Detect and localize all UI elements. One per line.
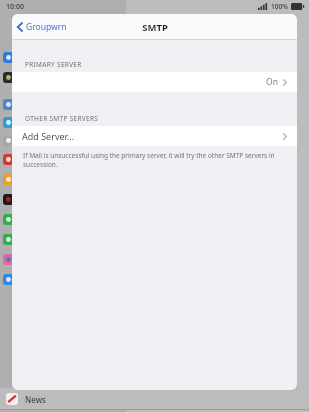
button[interactable]: App icon (3, 194, 14, 205)
staticText: SMTP (142, 21, 168, 34)
button[interactable]: App icon (3, 117, 14, 128)
staticText: OTHER SMTP SERVERS (25, 114, 99, 123)
button[interactable]: App icon (3, 174, 14, 185)
staticText: On (266, 76, 278, 88)
staticText: 10:00 (6, 2, 24, 12)
button[interactable]: News (0, 388, 309, 410)
staticText: PRIMARY SERVER (25, 60, 82, 69)
button[interactable]: On (12, 72, 297, 92)
button[interactable]: App icon (3, 99, 14, 110)
button[interactable]: App icon (3, 154, 14, 165)
button[interactable]: Add Server... (12, 126, 297, 146)
staticText: Add Server... (22, 130, 75, 142)
button[interactable]: App icon (3, 274, 14, 285)
button[interactable]: App icon (3, 214, 14, 225)
button[interactable]: Groupwrn (17, 21, 67, 33)
button[interactable]: App icon (3, 254, 14, 265)
button[interactable]: App icon (3, 234, 14, 245)
button[interactable]: App icon (3, 135, 14, 146)
staticText: Groupwrn (26, 21, 67, 33)
staticText: News (25, 394, 46, 405)
staticText: 100% (271, 2, 288, 11)
staticText: If Mail is unsuccessful using the primar… (23, 151, 285, 169)
button[interactable]: App icon (3, 52, 14, 63)
button[interactable]: App icon (3, 72, 14, 83)
